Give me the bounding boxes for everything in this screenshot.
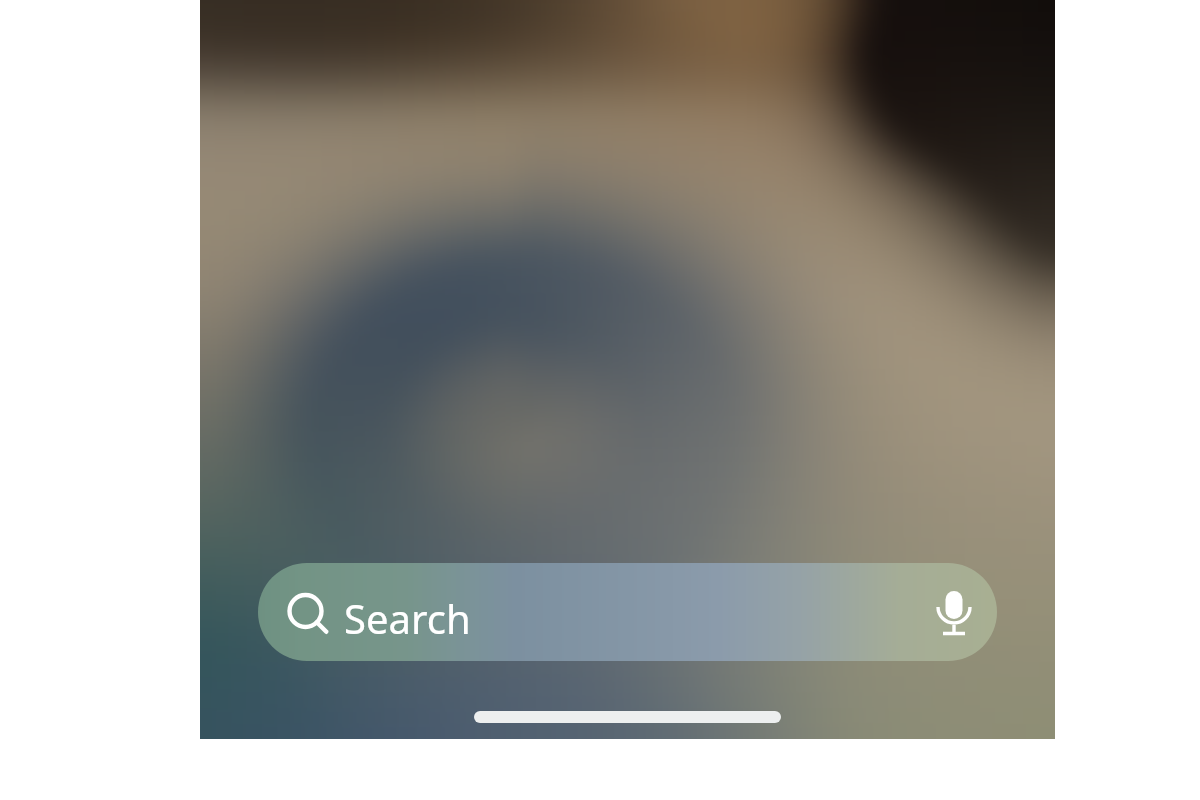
staticText: Search bbox=[344, 591, 471, 645]
button[interactable]: Search bbox=[258, 563, 997, 661]
button[interactable]: Voice search bbox=[906, 563, 997, 661]
